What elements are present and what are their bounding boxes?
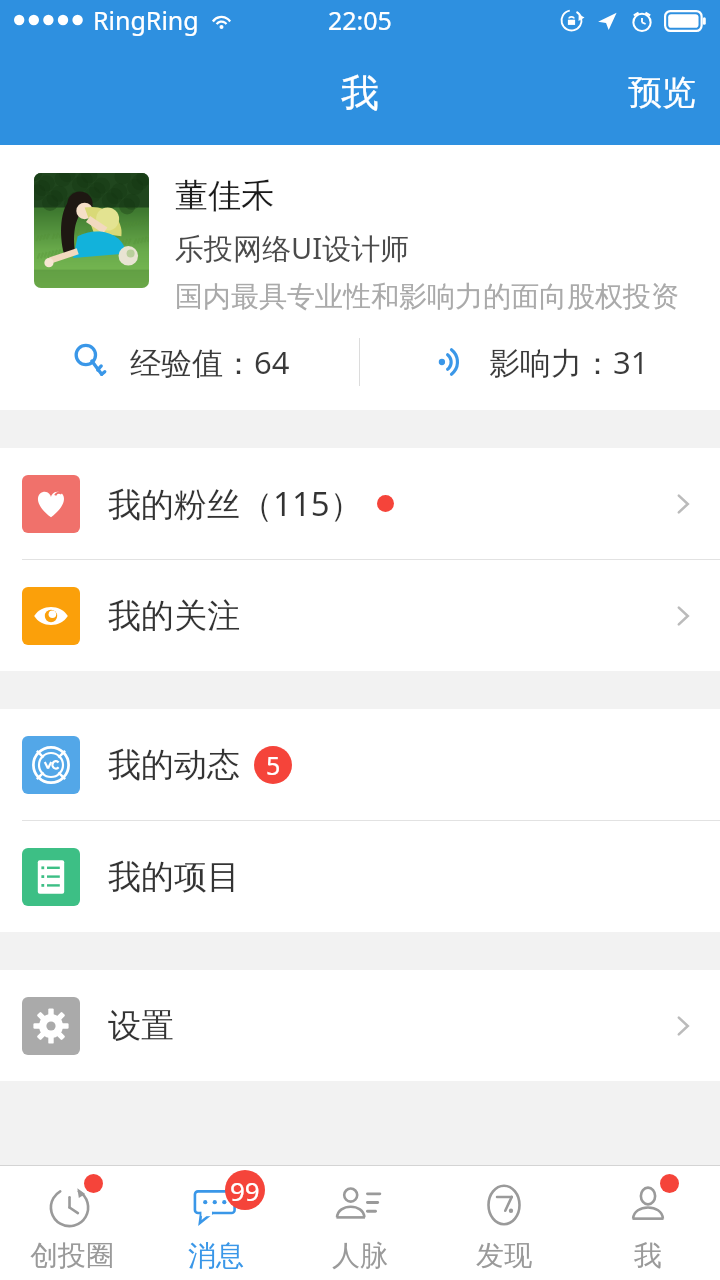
button[interactable]: 人脉: [288, 1166, 432, 1280]
button[interactable]: 设置: [0, 970, 720, 1081]
staticText: 预览: [628, 71, 696, 114]
staticText: 我的粉丝（115）: [108, 481, 363, 526]
button[interactable]: 我: [576, 1166, 720, 1280]
staticText: 董佳禾: [175, 175, 274, 217]
button[interactable]: 经验值：64: [0, 314, 359, 410]
button[interactable]: 我的粉丝（115）: [0, 448, 720, 559]
button[interactable]: 我的项目: [0, 821, 720, 932]
button[interactable]: 99: [144, 1166, 288, 1280]
staticText: 22:05: [328, 3, 392, 37]
staticText: 影响力：31: [489, 341, 649, 383]
button[interactable]: 影响力：31: [360, 314, 720, 410]
staticText: 我: [341, 69, 379, 117]
staticText: 乐投网络UI设计师: [175, 228, 410, 268]
staticText: 我的动态: [108, 744, 240, 786]
staticText: 99: [230, 1173, 260, 1208]
button[interactable]: 我的关注: [0, 560, 720, 671]
staticText: 人脉: [332, 1238, 388, 1273]
staticText: 创投圈: [30, 1238, 114, 1273]
staticText: 经验值：64: [130, 341, 290, 383]
staticText: 设置: [108, 1005, 174, 1047]
staticText: 发现: [476, 1238, 532, 1273]
staticText: 我: [634, 1238, 662, 1273]
button[interactable]: 发现: [432, 1166, 576, 1280]
staticText: RingRing: [93, 3, 199, 37]
button[interactable]: 我的动态: [0, 709, 720, 820]
staticText: 我的项目: [108, 856, 240, 898]
staticText: 我的关注: [108, 595, 240, 637]
staticText: 消息: [188, 1238, 244, 1273]
staticText: 国内最具专业性和影响力的面向股权投资: [175, 279, 679, 314]
button[interactable]: 创投圈: [0, 1166, 144, 1280]
staticText: 5: [266, 748, 281, 782]
button[interactable]: 预览: [604, 57, 720, 128]
button[interactable]: 董佳禾: [0, 145, 720, 314]
